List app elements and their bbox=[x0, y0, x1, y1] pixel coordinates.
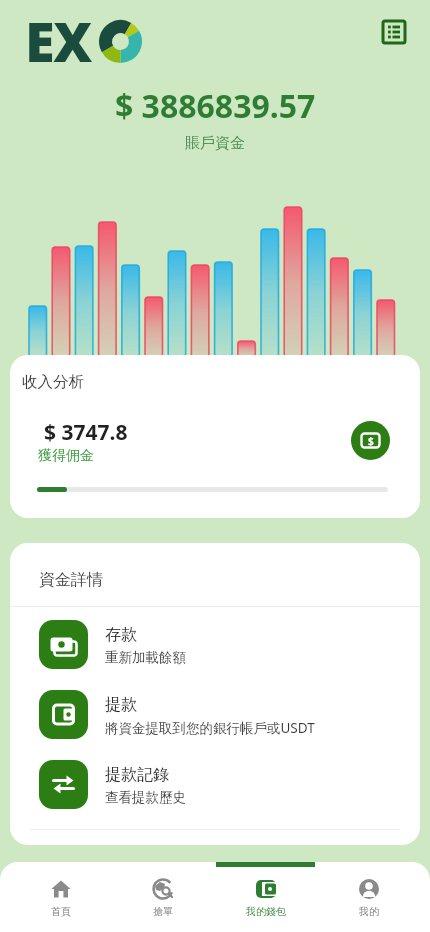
button[interactable]: 我的 bbox=[317, 862, 420, 932]
staticText: 提款 bbox=[105, 695, 137, 715]
staticText: $ 3886839.57 bbox=[115, 84, 316, 128]
staticText: 查看提款歷史 bbox=[105, 789, 186, 806]
staticText: 獲得佣金 bbox=[38, 447, 94, 465]
staticText: 將資金提取到您的銀行帳戶或USDT bbox=[105, 719, 315, 737]
staticText: 首頁 bbox=[51, 905, 71, 918]
button[interactable] bbox=[39, 760, 88, 809]
staticText: $ bbox=[368, 434, 374, 448]
button[interactable]: 搶單 bbox=[112, 862, 214, 932]
button[interactable]: 我的錢包 bbox=[214, 862, 317, 932]
button[interactable]: 首頁 bbox=[10, 862, 112, 932]
staticText: 搶單 bbox=[153, 905, 173, 918]
staticText: $ 3747.8 bbox=[44, 418, 128, 447]
button[interactable] bbox=[39, 620, 88, 669]
staticText: 我的錢包 bbox=[246, 905, 286, 918]
staticText: 提款記錄 bbox=[105, 765, 169, 785]
staticText: 我的 bbox=[359, 905, 379, 918]
staticText: 收入分析 bbox=[22, 372, 84, 392]
staticText: 賬戶資金 bbox=[185, 134, 245, 153]
staticText: 存款 bbox=[105, 625, 137, 645]
staticText: 資金詳情 bbox=[39, 570, 103, 590]
button[interactable] bbox=[39, 690, 88, 739]
staticText: EX bbox=[25, 4, 91, 78]
staticText: 重新加載餘額 bbox=[105, 649, 186, 666]
button[interactable] bbox=[381, 19, 407, 45]
button[interactable]: $ bbox=[351, 421, 390, 460]
